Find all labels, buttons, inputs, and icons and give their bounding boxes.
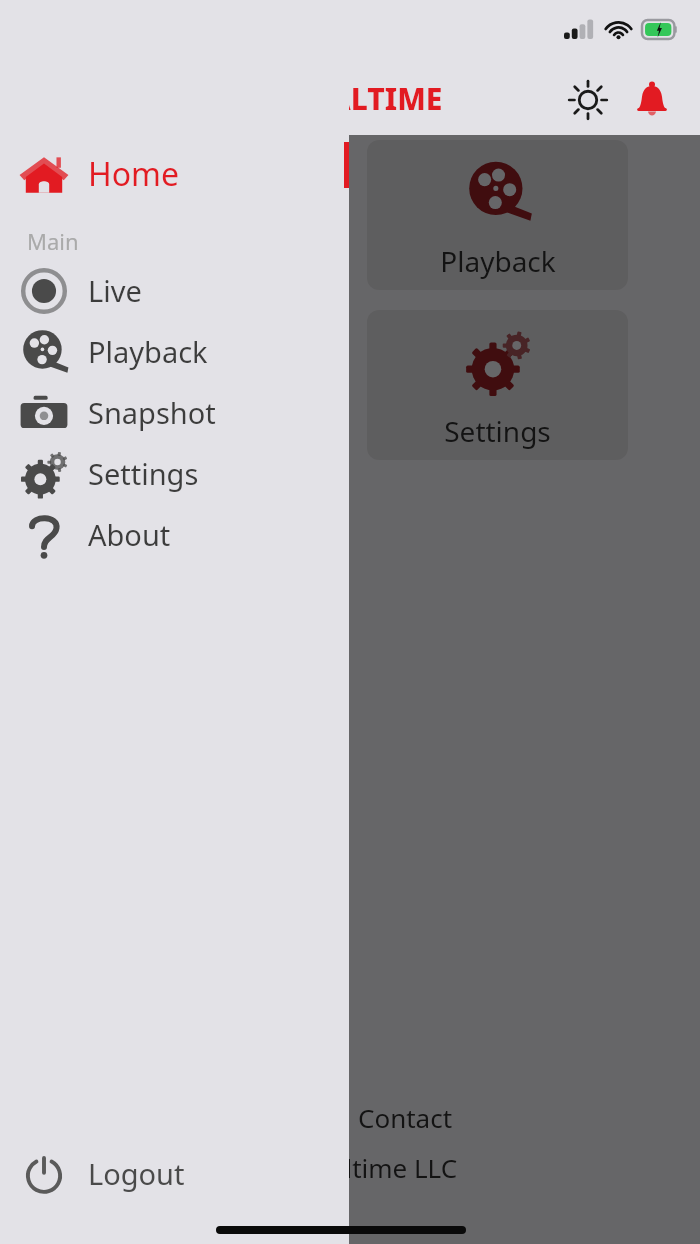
staticText: IC Realtime LLC [268,1150,458,1185]
staticText: About [88,515,171,554]
staticText: Live [88,271,142,310]
button[interactable]: Brightness [564,76,612,124]
staticText: Playback [440,242,556,280]
button[interactable]: Live [0,260,349,321]
staticText: Contact [358,1100,453,1135]
button[interactable]: About [0,504,349,565]
staticText: Logout [88,1154,185,1193]
staticText: Home [88,152,180,196]
button[interactable]: Snapshot [0,382,349,443]
button[interactable]: Playback [367,140,628,290]
button[interactable]: Logout [0,1134,349,1212]
button[interactable]: Settings [367,310,628,460]
button[interactable]: Notifications [628,76,676,124]
staticText: Snapshot [88,393,216,432]
button[interactable]: Settings [0,443,349,504]
button[interactable]: Playback [0,321,349,382]
button[interactable]: Home [0,143,349,204]
staticText: Settings [444,412,551,450]
staticText: Playback [88,332,208,371]
staticText: Settings [88,454,199,493]
staticText: REALTIME [293,78,443,119]
staticText: Main [27,226,79,256]
